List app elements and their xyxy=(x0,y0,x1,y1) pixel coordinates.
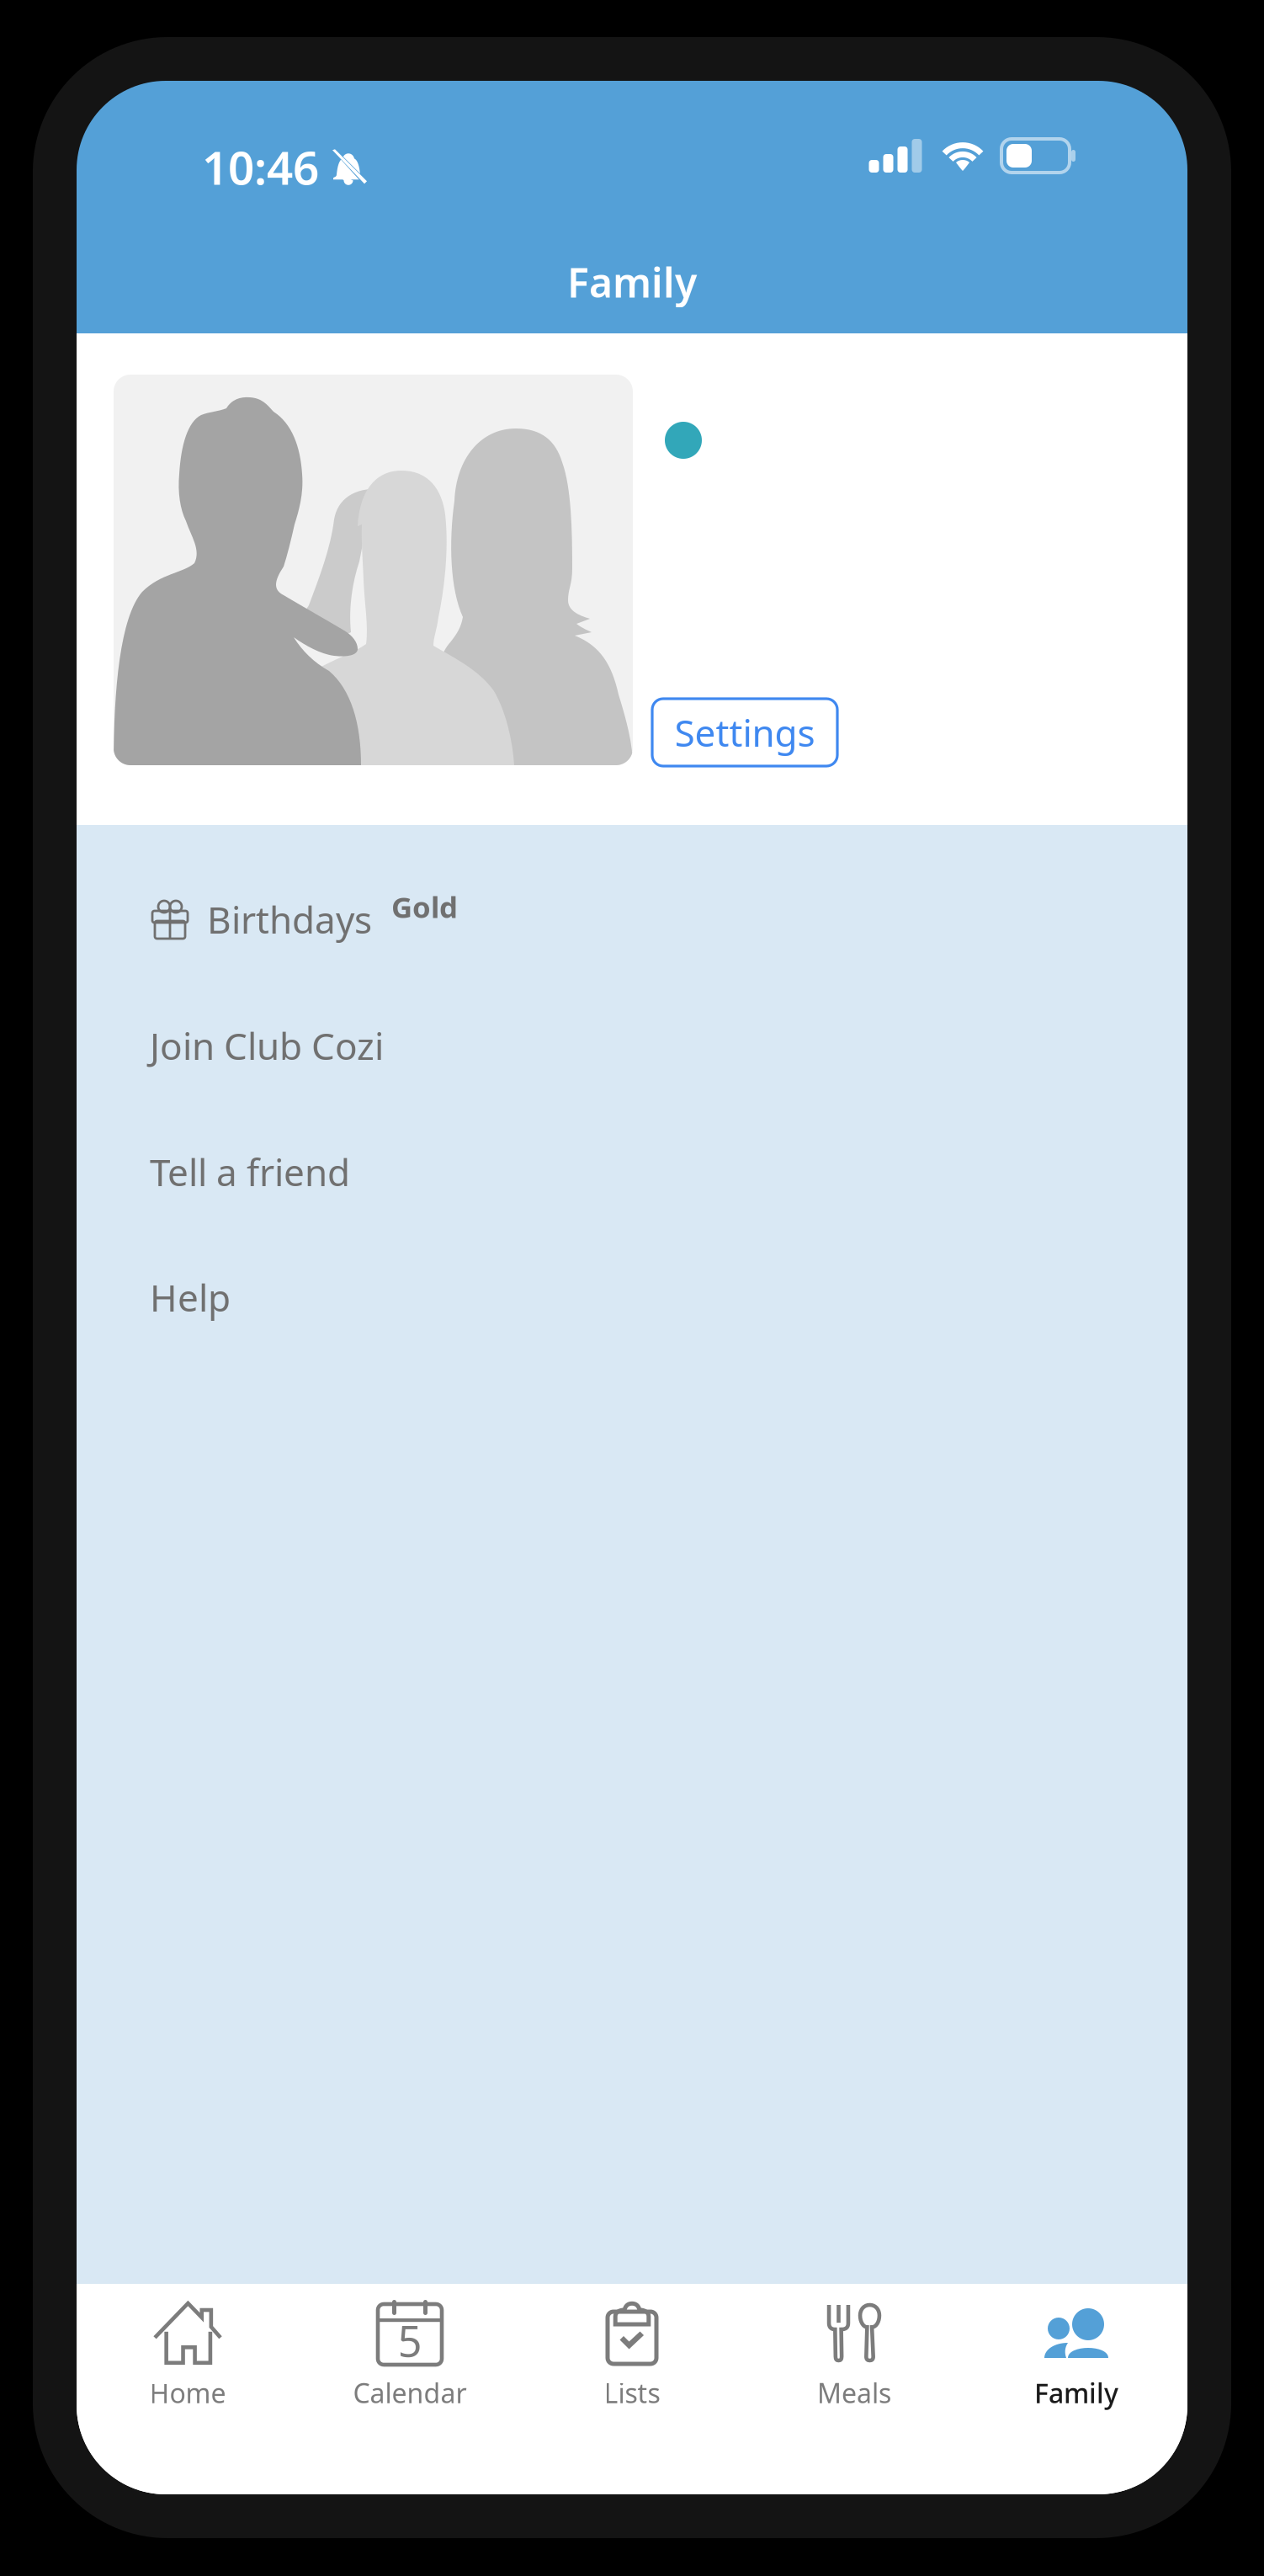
staticText: Lists xyxy=(604,2375,660,2411)
button[interactable]: Family xyxy=(965,2284,1187,2494)
button[interactable]: Join Club Cozi xyxy=(77,982,1187,1109)
staticText: Home xyxy=(149,2375,226,2411)
staticText: Settings xyxy=(674,708,815,757)
button[interactable]: Settings xyxy=(652,699,837,766)
staticText: Meals xyxy=(817,2375,891,2411)
button[interactable]: Meals xyxy=(743,2284,965,2494)
staticText: 10:46 xyxy=(202,136,319,197)
staticText: Gold xyxy=(391,887,458,926)
button[interactable]: Help xyxy=(77,1234,1187,1360)
staticText: 5 xyxy=(398,2312,422,2369)
button[interactable]: Lists xyxy=(521,2284,743,2494)
staticText: Join Club Cozi xyxy=(150,1021,384,1070)
staticText: Birthdays xyxy=(207,895,372,944)
staticText: Family xyxy=(1034,2375,1118,2411)
staticText: Family xyxy=(567,255,697,309)
staticText: Calendar xyxy=(353,2375,467,2411)
button[interactable]: Home xyxy=(77,2284,299,2494)
staticText: Help xyxy=(150,1273,231,1322)
staticText: Tell a friend xyxy=(150,1147,350,1196)
button[interactable]: 5 xyxy=(299,2284,521,2494)
button[interactable]: Tell a friend xyxy=(77,1109,1187,1235)
button[interactable]: Birthdays xyxy=(77,856,1187,982)
